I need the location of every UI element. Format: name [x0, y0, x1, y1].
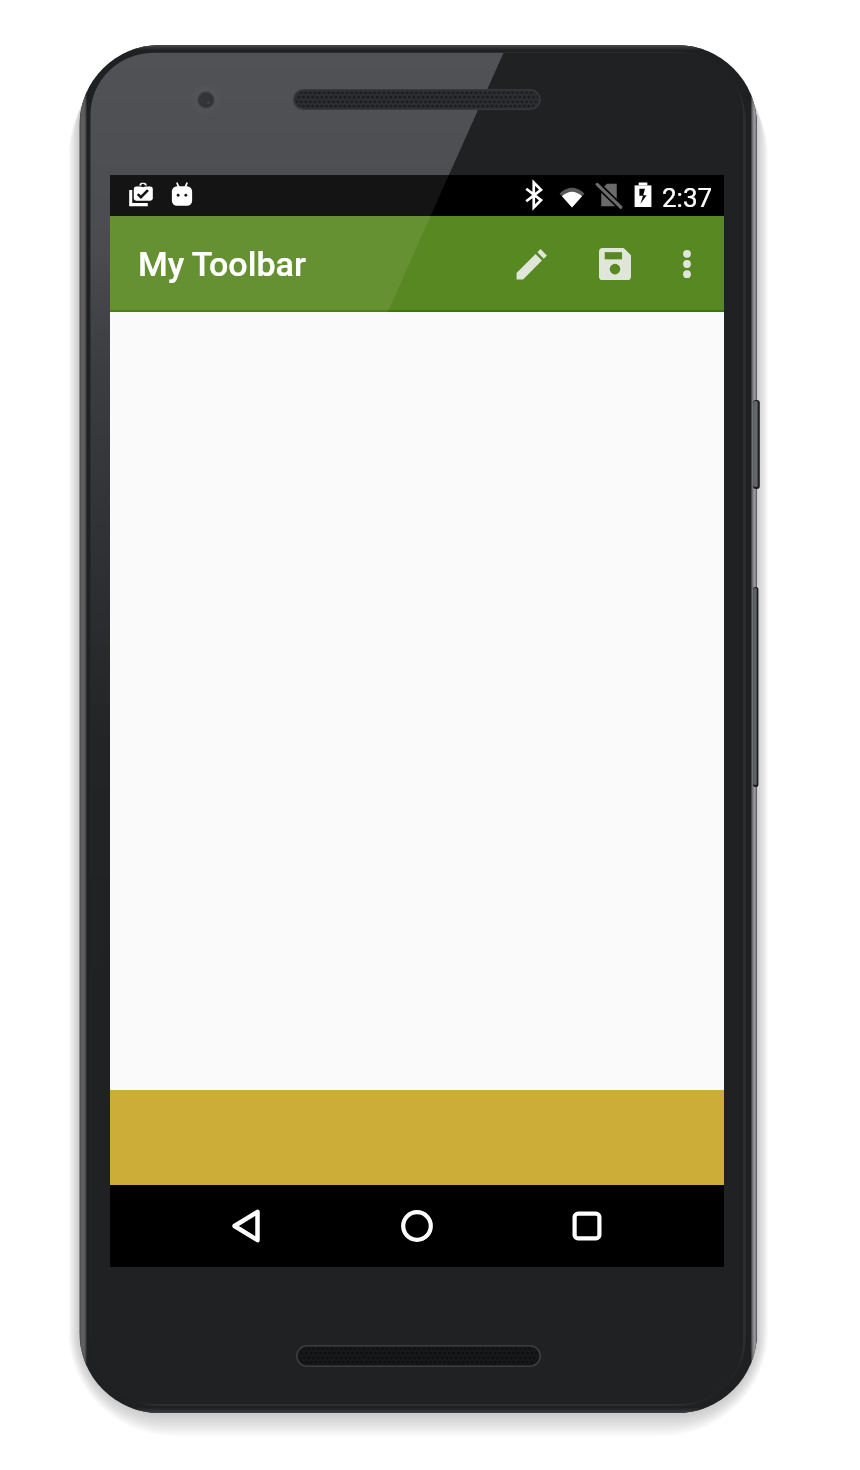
staticText: 2:37 — [662, 183, 713, 213]
button[interactable]: Edit — [494, 216, 570, 312]
staticText: My Toolbar — [138, 244, 306, 284]
button[interactable]: Back — [205, 1185, 287, 1267]
button[interactable]: Recent apps — [546, 1185, 628, 1267]
button[interactable]: Home — [376, 1185, 458, 1267]
button[interactable]: Save — [577, 216, 653, 312]
button[interactable]: More options — [653, 216, 721, 312]
